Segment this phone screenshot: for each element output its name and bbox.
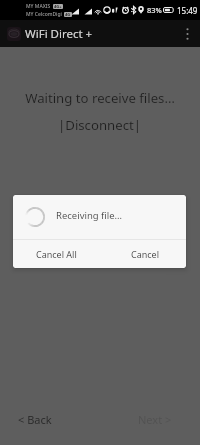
staticText: 4G [65,12,71,17]
button[interactable]: Cancel [99,240,186,268]
staticText: WiFi Direct + [25,26,93,42]
staticText: MY CelcomDigi [26,11,62,18]
staticText: Receiving file… [56,209,123,222]
staticText: 15:49 [177,5,198,16]
staticText: 83% [147,5,162,15]
button[interactable]: < Back [0,404,100,434]
staticText: < Back [18,412,52,427]
staticText: Waiting to receive files… [0,89,200,107]
button[interactable]: |Disconnect| [50,114,150,136]
staticText: |Disconnect| [58,116,142,134]
button[interactable]: More options [174,20,200,47]
button[interactable]: Cancel All [13,240,99,268]
staticText: Cancel [131,248,160,260]
staticText: MY MAXIS [26,3,51,10]
staticText: Cancel All [36,248,77,260]
staticText: Next > [138,412,172,427]
staticText: 4G+ [54,4,62,9]
